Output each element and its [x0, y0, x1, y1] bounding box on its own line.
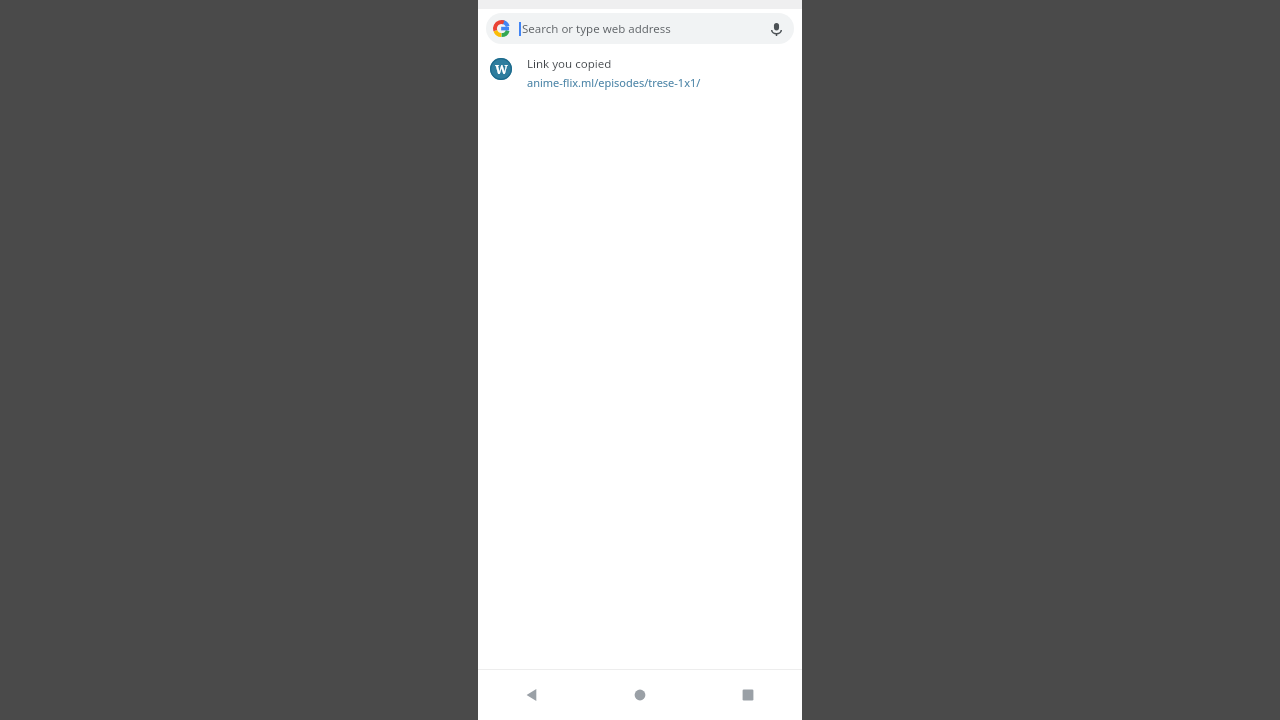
- staticText: Search or type web address: [522, 21, 764, 37]
- staticText: W: [495, 61, 508, 77]
- button[interactable]: W: [478, 54, 802, 96]
- staticText: anime-flix.ml/episodes/trese-1x1/: [527, 75, 701, 90]
- button[interactable]: Search or type web address: [486, 13, 794, 44]
- button[interactable]: Home: [586, 670, 694, 720]
- button[interactable]: Back: [478, 670, 586, 720]
- button[interactable]: Voice search: [764, 17, 788, 41]
- button[interactable]: Recent apps: [694, 670, 802, 720]
- staticText: Link you copied: [527, 56, 612, 72]
